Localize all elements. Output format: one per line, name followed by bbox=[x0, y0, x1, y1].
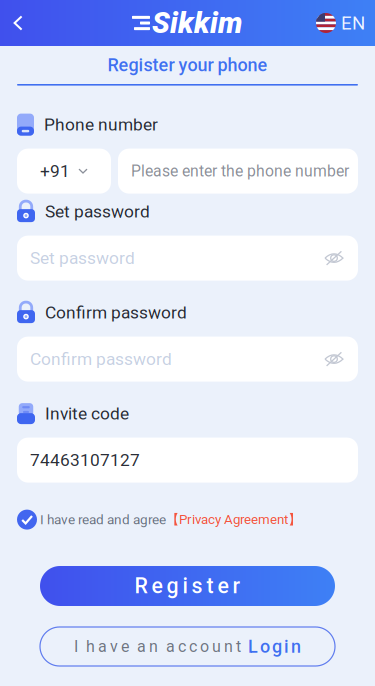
staticText: Sikkim bbox=[152, 6, 243, 40]
staticText: +91 bbox=[40, 161, 70, 181]
staticText: Please enter the phone number bbox=[131, 162, 349, 180]
staticText: Confirm password bbox=[45, 302, 187, 323]
staticText: 74463107127 bbox=[30, 450, 140, 470]
button[interactable]: Show Set password bbox=[324, 237, 358, 279]
staticText: R e g i s t e r bbox=[134, 573, 240, 598]
button[interactable]: Country code +91 bbox=[17, 149, 111, 194]
staticText: 【Privacy Agreement】 bbox=[166, 511, 301, 528]
staticText: EN bbox=[341, 12, 365, 34]
staticText: Set password bbox=[30, 248, 135, 268]
button[interactable]: R e g i s t e r bbox=[40, 566, 335, 606]
staticText: I have read and agree bbox=[40, 512, 166, 527]
staticText: Set password bbox=[45, 201, 150, 222]
staticText: Confirm password bbox=[30, 349, 172, 369]
button[interactable]: I h a v e a n a c c o u n t bbox=[40, 627, 335, 666]
staticText: L o g i n bbox=[248, 636, 301, 657]
button[interactable]: Language English bbox=[316, 0, 375, 46]
button[interactable]: Show Confirm password bbox=[324, 338, 358, 380]
staticText: I h a v e a n a c c o u n t bbox=[74, 637, 241, 656]
button[interactable]: Back bbox=[0, 0, 36, 46]
staticText: Invite code bbox=[45, 403, 129, 424]
staticText: Register your phone bbox=[107, 54, 267, 76]
staticText: Phone number bbox=[44, 114, 158, 135]
button[interactable]: I have read and agree bbox=[17, 509, 358, 531]
